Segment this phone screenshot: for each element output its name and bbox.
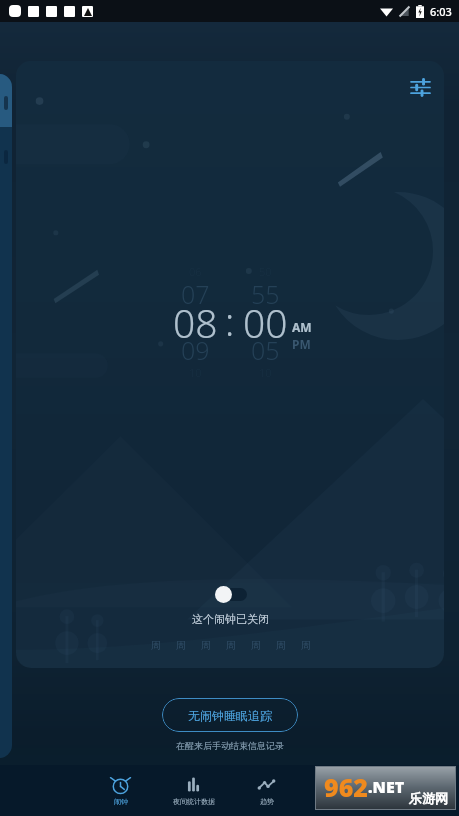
staticText: 周: [226, 639, 236, 652]
staticText: 07: [181, 277, 210, 311]
staticText: 6:03: [430, 4, 452, 19]
staticText: 周: [276, 639, 286, 652]
button[interactable]: 周: [249, 639, 262, 652]
button[interactable]: 趋势: [230, 765, 303, 816]
staticText: 00: [243, 296, 288, 349]
staticText: :: [225, 295, 235, 347]
staticText: 周: [201, 639, 211, 652]
staticText: 在醒来后手动结束信息记录: [176, 740, 284, 751]
staticText: 周: [301, 639, 311, 652]
button[interactable]: Alarm settings: [400, 67, 440, 107]
button[interactable]: 周: [199, 639, 212, 652]
button[interactable]: 闹钟: [84, 765, 157, 816]
button[interactable]: 周: [299, 639, 312, 652]
staticText: .NET: [368, 776, 405, 798]
staticText: PM: [292, 336, 311, 352]
staticText: 更多: [333, 797, 347, 806]
staticText: 闹钟: [114, 797, 128, 806]
staticText: 无闹钟睡眠追踪: [188, 708, 272, 723]
button[interactable]: 更多: [303, 765, 376, 816]
button[interactable]: 周: [274, 639, 287, 652]
staticText: 09: [181, 333, 210, 367]
staticText: 05: [251, 333, 280, 367]
button[interactable]: 周: [174, 639, 187, 652]
staticText: 夜间统计数据: [173, 797, 215, 806]
staticText: 趋势: [260, 797, 274, 806]
staticText: 周: [176, 639, 186, 652]
staticText: 55: [251, 277, 280, 311]
staticText: 周: [251, 639, 261, 652]
button[interactable]: Alarm on/off: [215, 584, 247, 604]
staticText: 乐游网: [409, 790, 448, 806]
staticText: 962: [324, 770, 368, 804]
button[interactable]: 周: [149, 639, 162, 652]
button[interactable]: 无闹钟睡眠追踪: [162, 698, 298, 732]
staticText: 这个闹钟已关闭: [192, 612, 269, 626]
button[interactable]: 夜间统计数据: [157, 765, 230, 816]
staticText: 周: [151, 639, 161, 652]
staticText: 08: [173, 296, 218, 349]
staticText: AM: [292, 319, 312, 335]
button[interactable]: 周: [224, 639, 237, 652]
